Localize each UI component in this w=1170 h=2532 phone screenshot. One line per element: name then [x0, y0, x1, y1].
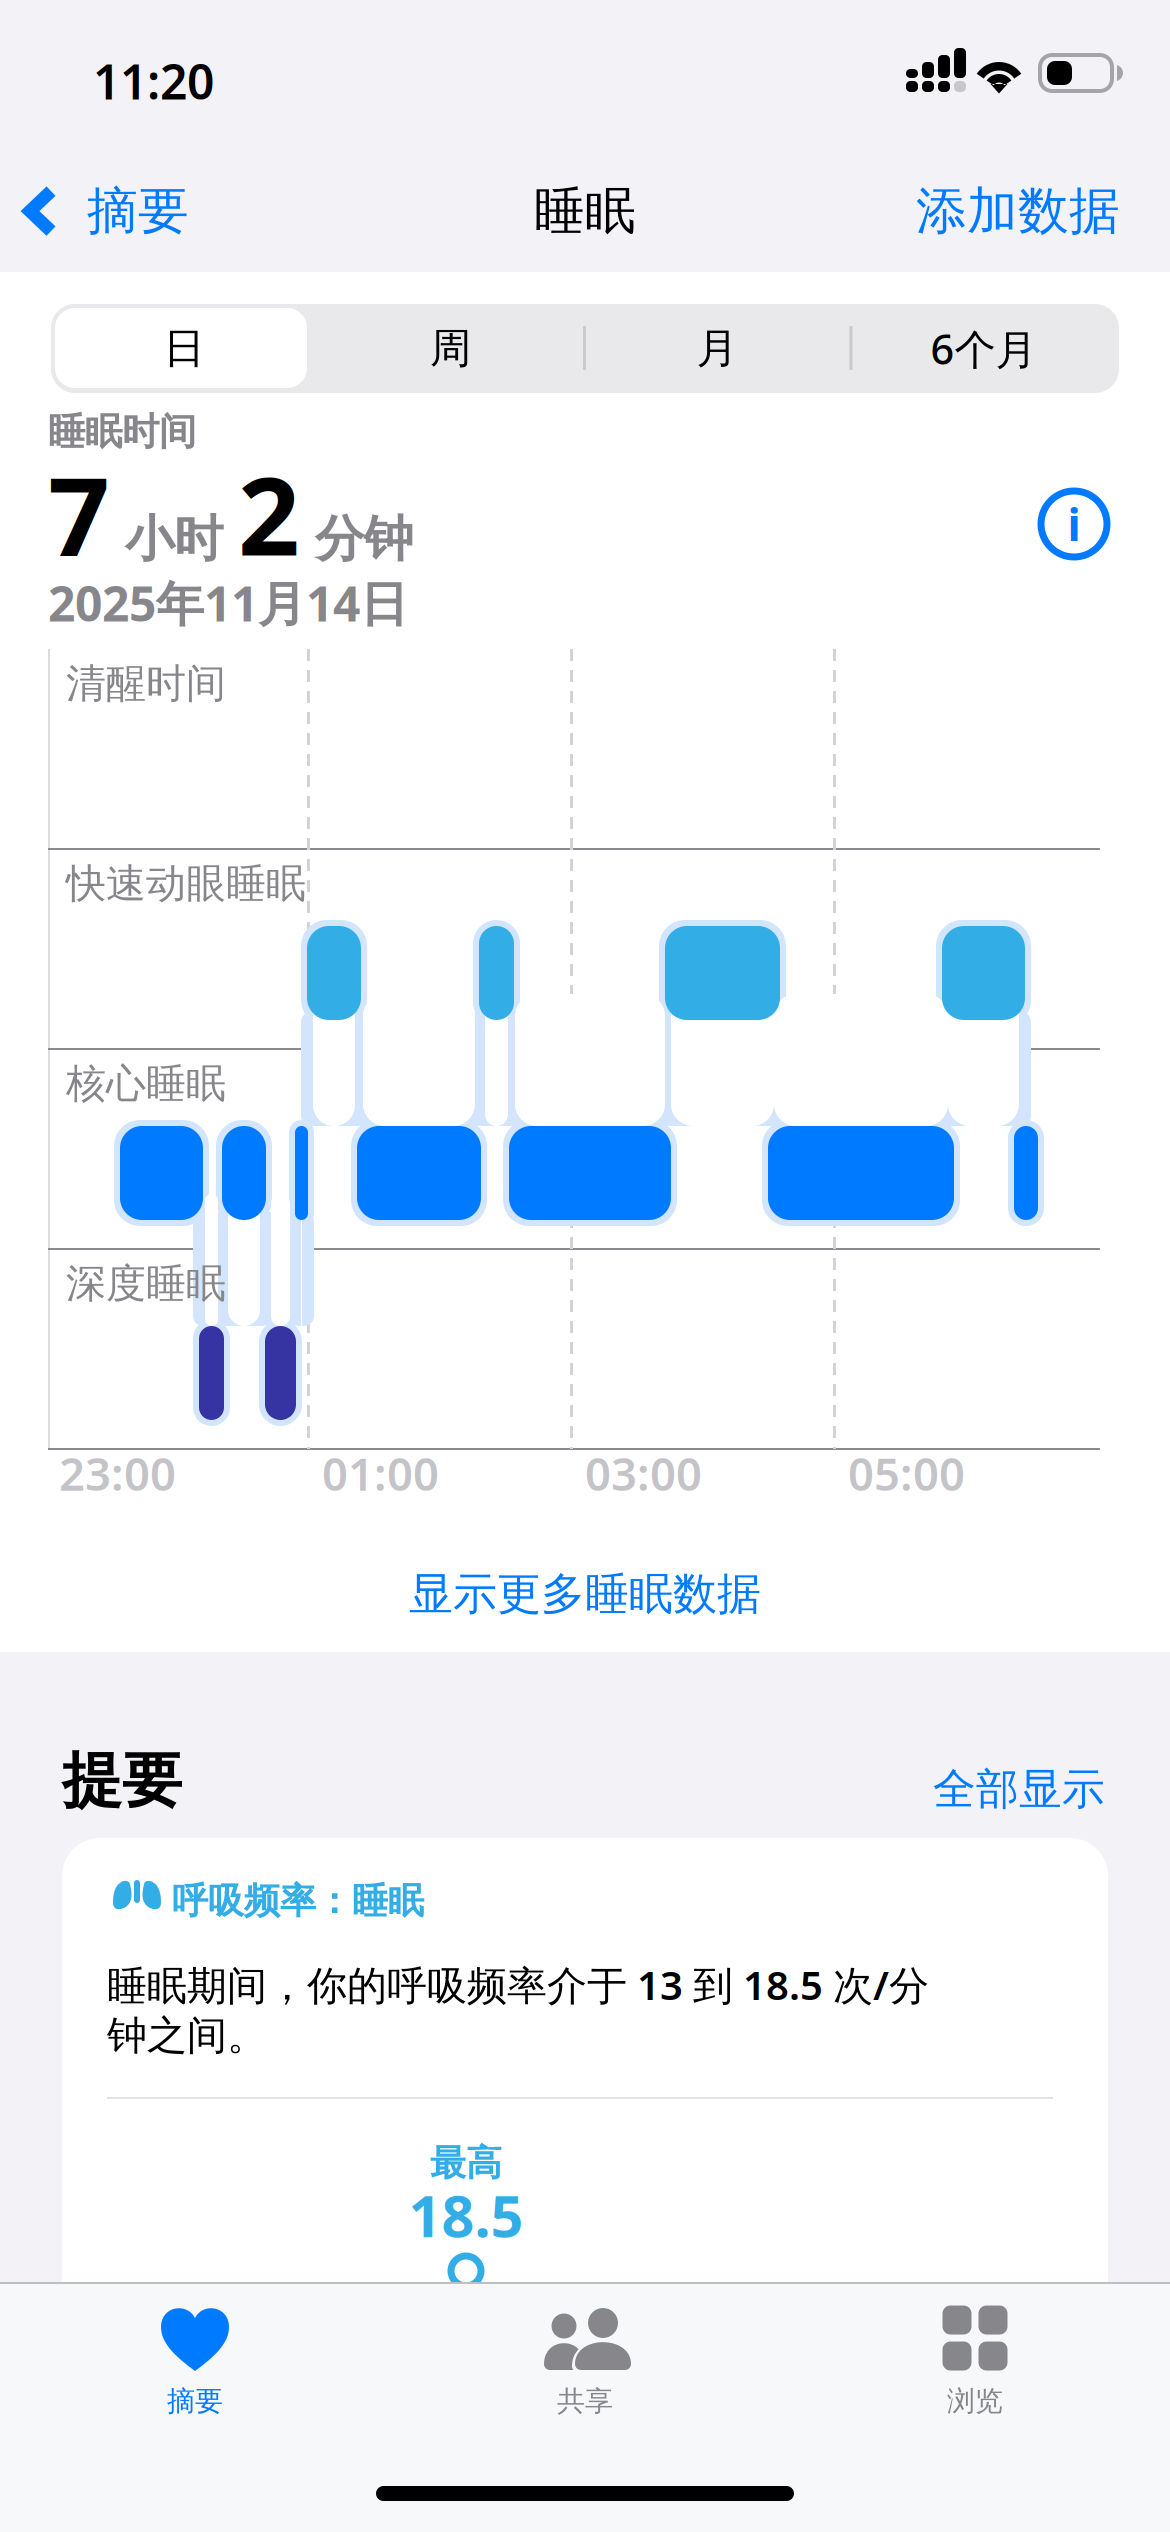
staticText: 睡眠时间	[48, 409, 196, 455]
staticText: 清醒时间	[66, 659, 226, 708]
staticText: 呼吸频率：睡眠	[172, 1879, 424, 1923]
staticText: 月	[696, 323, 737, 374]
staticText: 2025年11月14日	[48, 571, 408, 635]
staticText: 01:00	[322, 1443, 439, 1503]
staticText: 11:20	[93, 49, 214, 113]
button[interactable]: 日	[51, 304, 317, 393]
button[interactable]: 摘要	[25, 2306, 365, 2466]
button[interactable]: 月	[584, 304, 850, 393]
staticText: 摘要	[167, 2384, 223, 2418]
staticText: 提要	[62, 1744, 182, 1818]
staticText: 核心睡眠	[66, 1059, 226, 1108]
staticText: 小时	[110, 509, 238, 569]
button[interactable]: 摘要	[22, 164, 189, 258]
staticText: 05:00	[848, 1443, 965, 1503]
staticText: 最高	[430, 2141, 502, 2185]
button[interactable]: 全部显示	[933, 1755, 1105, 1823]
staticText: 添加数据	[916, 180, 1120, 242]
staticText: 18.5	[408, 2177, 523, 2253]
staticText: 6个月	[930, 321, 1036, 376]
button[interactable]: 信息	[1026, 476, 1122, 572]
button[interactable]: 添加数据	[916, 164, 1120, 258]
staticText: 7	[48, 442, 110, 585]
staticText: 睡眠	[534, 180, 636, 242]
staticText: 03:00	[585, 1443, 702, 1503]
button[interactable]: 共享	[415, 2306, 755, 2466]
button[interactable]: 显示更多睡眠数据	[0, 1539, 1170, 1649]
staticText: 全部显示	[933, 1763, 1105, 1815]
staticText: 摘要	[87, 180, 189, 242]
button[interactable]: 6个月	[850, 304, 1116, 393]
staticText: 周	[430, 323, 471, 374]
staticText: 显示更多睡眠数据	[409, 1567, 761, 1621]
staticText: i	[1067, 495, 1080, 553]
staticText: 浏览	[947, 2384, 1003, 2418]
staticText: 日	[163, 323, 204, 374]
staticText: 分钟	[300, 509, 413, 569]
staticText: 2	[238, 442, 300, 585]
staticText: 深度睡眠	[66, 1259, 226, 1308]
staticText: 共享	[557, 2384, 613, 2418]
staticText: 睡眠期间，你的呼吸频率介于 13 到 18.5 次/分钟之间。	[107, 1958, 929, 2060]
staticText: 快速动眼睡眠	[66, 859, 306, 908]
staticText: 23:00	[59, 1443, 176, 1503]
button[interactable]: 浏览	[805, 2306, 1145, 2466]
button[interactable]: 周	[317, 304, 583, 393]
